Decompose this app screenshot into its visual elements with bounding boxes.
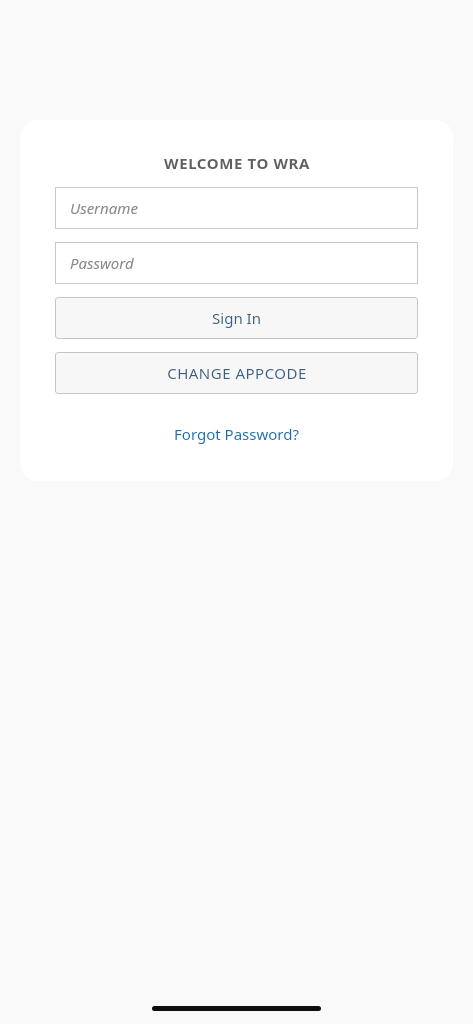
staticText: CHANGE APPCODE	[167, 363, 307, 383]
button[interactable]: Username	[55, 187, 418, 229]
staticText: Forgot Password?	[174, 424, 299, 444]
button[interactable]: Sign In	[55, 297, 418, 339]
button[interactable]: Password	[55, 242, 418, 284]
staticText: Password	[70, 253, 134, 273]
button[interactable]: CHANGE APPCODE	[55, 352, 418, 394]
staticText: Sign In	[212, 308, 261, 328]
staticText: Username	[70, 198, 138, 218]
staticText: WELCOME TO WRA	[164, 153, 310, 173]
button[interactable]: Forgot Password?	[166, 420, 307, 448]
